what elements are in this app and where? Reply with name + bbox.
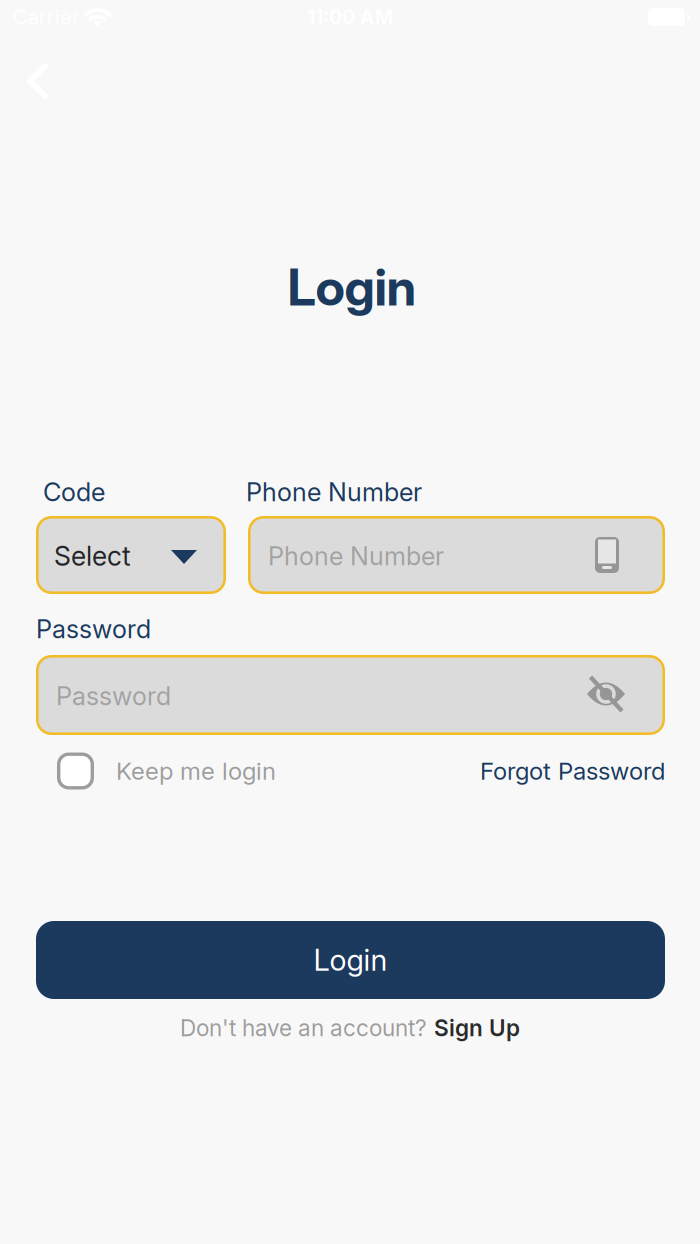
button[interactable]: Don't have an account? [180,1015,520,1041]
staticText: Password [56,681,171,711]
button[interactable]: Select [36,516,226,594]
staticText: Password [36,614,151,644]
button[interactable]: Login [36,921,665,999]
staticText: Sign Up [434,1015,520,1041]
staticText: Forgot Password [480,757,665,785]
staticText: Login [287,256,416,318]
button[interactable]: Show password [580,668,634,722]
staticText: Phone Number [268,541,444,571]
staticText: Select [54,540,131,572]
staticText: Login [313,943,387,977]
staticText: Keep me login [116,757,276,785]
button[interactable]: Forgot Password [365,757,665,785]
button[interactable]: Keep me login [57,752,417,789]
staticText: Code [43,477,105,507]
staticText: Phone Number [246,477,422,507]
staticText: Don't have an account? [180,1015,427,1041]
